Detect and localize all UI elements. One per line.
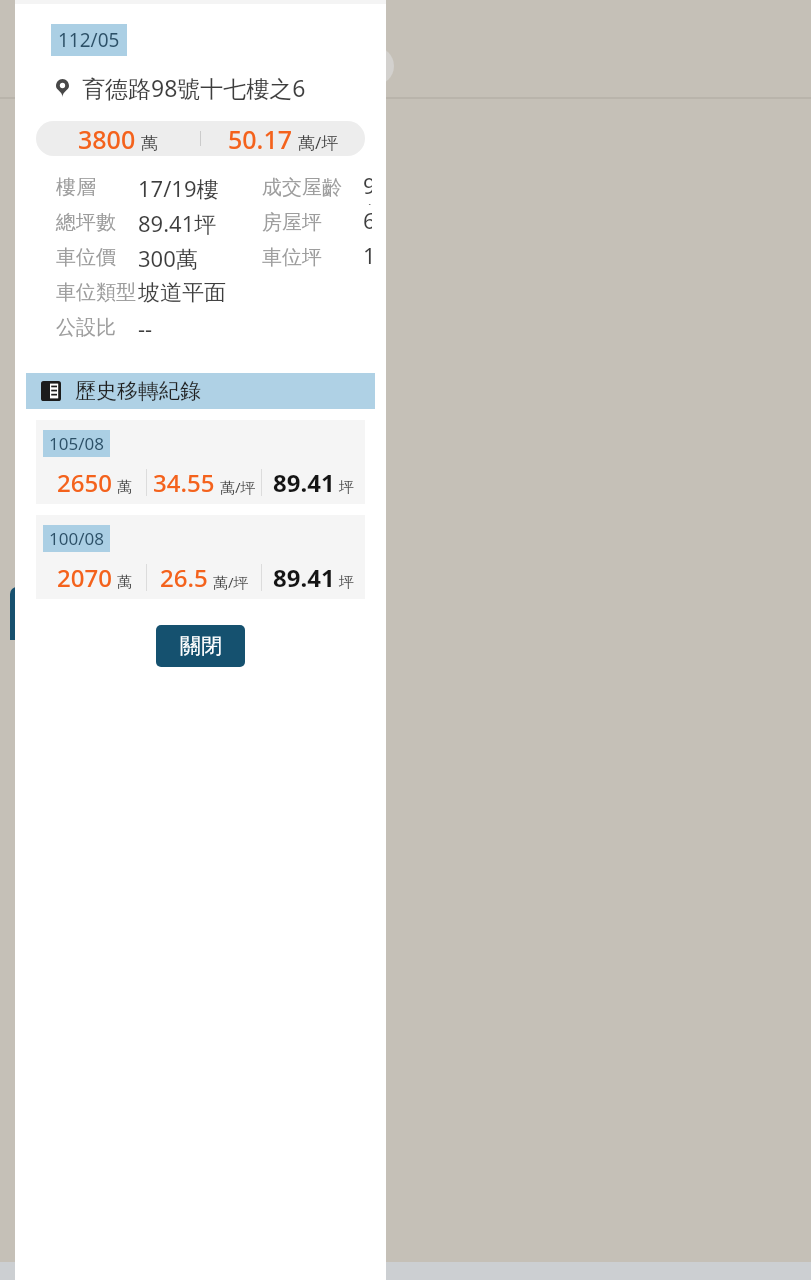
staticText: 105/08: [49, 432, 104, 455]
staticText: 成交屋齡: [262, 175, 342, 200]
staticText: 坡道平面: [138, 279, 226, 307]
button[interactable]: 105/08: [36, 420, 365, 504]
staticText: 9年: [363, 170, 372, 205]
staticText: 2070: [57, 561, 112, 594]
staticText: --: [138, 313, 153, 343]
staticText: 房屋坪: [262, 210, 322, 235]
staticText: 育德路98號十七樓之6: [82, 72, 306, 103]
staticText: 19.65坪: [363, 240, 372, 275]
staticText: 100/08: [49, 527, 104, 550]
staticText: 坪: [339, 573, 354, 592]
staticText: 300萬: [138, 243, 198, 273]
staticText: 萬: [117, 478, 132, 497]
button[interactable]: 關閉: [156, 625, 245, 667]
staticText: 50.17: [228, 122, 293, 156]
other: History records: [41, 381, 61, 401]
staticText: 2650: [57, 466, 112, 499]
staticText: 34.55: [153, 466, 215, 499]
staticText: 公設比: [56, 315, 116, 340]
staticText: 89.41坪: [138, 208, 217, 238]
button[interactable]: History records: [26, 373, 375, 409]
staticText: 樓層: [56, 175, 96, 200]
staticText: 萬: [141, 133, 158, 154]
staticText: 關閉: [180, 633, 222, 659]
staticText: 車位價: [56, 245, 116, 270]
staticText: 26.5: [160, 561, 208, 594]
staticText: 萬/坪: [298, 131, 339, 154]
staticText: 89.41: [273, 466, 335, 499]
staticText: 112/05: [58, 27, 120, 53]
staticText: 17/19樓: [138, 173, 219, 203]
staticText: 車位類型: [56, 280, 136, 305]
staticText: 坪: [339, 478, 354, 497]
button[interactable]: 100/08: [36, 515, 365, 599]
staticText: 萬: [117, 573, 132, 592]
staticText: 3800: [78, 122, 136, 156]
staticText: 萬/坪: [213, 572, 249, 592]
staticText: 歷史移轉紀錄: [75, 378, 201, 404]
staticText: 車位坪: [262, 245, 322, 270]
staticText: 69.76坪: [363, 205, 372, 240]
staticText: 萬/坪: [220, 477, 256, 497]
staticText: 89.41: [273, 561, 335, 594]
staticText: 總坪數: [56, 210, 116, 235]
